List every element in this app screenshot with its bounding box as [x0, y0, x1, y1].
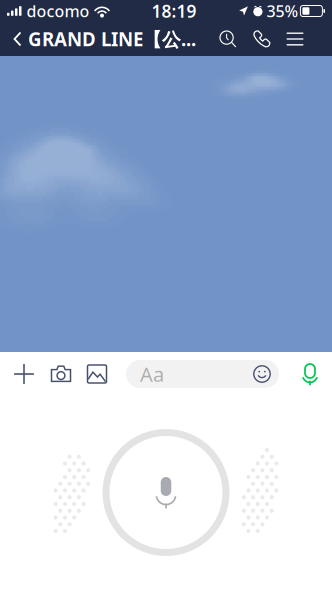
staticText: Aa [140, 361, 164, 387]
staticText: GRAND LINE【公式】 [28, 27, 203, 51]
button[interactable]: Back [8, 22, 27, 56]
staticText: 35% [266, 0, 298, 22]
staticText: 18:19 [151, 0, 196, 22]
button[interactable]: Photos [78, 352, 116, 396]
button[interactable]: Aa [126, 360, 279, 388]
button[interactable]: Voice message [293, 352, 327, 396]
staticText: docomo [26, 0, 89, 22]
button[interactable]: Record voice message [102, 429, 229, 556]
button[interactable]: Call [245, 21, 279, 57]
button[interactable]: Search [211, 21, 245, 57]
button[interactable]: Camera [44, 352, 78, 396]
button[interactable]: Menu [279, 21, 311, 57]
button[interactable]: Add [4, 352, 44, 396]
